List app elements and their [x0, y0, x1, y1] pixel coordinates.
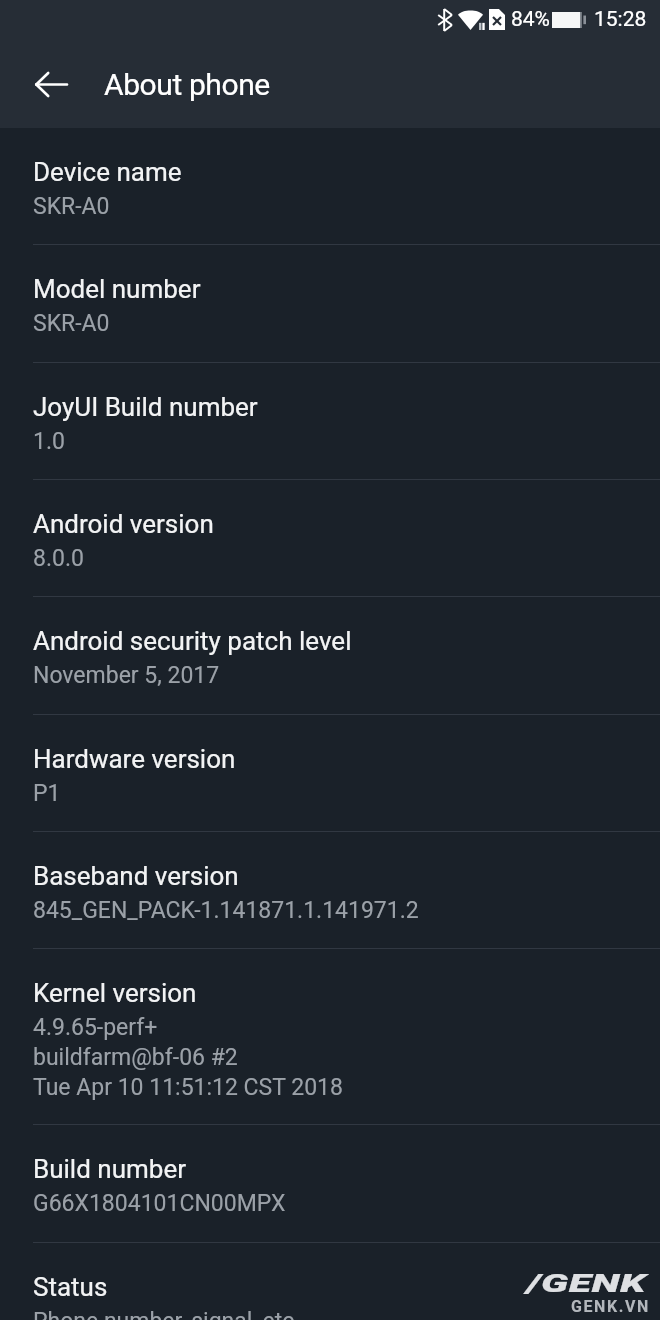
staticText: Device name [33, 157, 182, 187]
button[interactable]: Back [3, 44, 99, 124]
button[interactable]: Build number [0, 1125, 660, 1242]
staticText: SKR-A0 [33, 310, 110, 337]
staticText: 845_GEN_PACK-1.141871.1.141971.2 [33, 897, 419, 924]
button[interactable]: Model number [0, 245, 660, 362]
staticText: Phone number, signal, etc. [33, 1308, 301, 1320]
button[interactable]: JoyUI Build number [0, 363, 660, 480]
button[interactable]: Status [0, 1243, 660, 1320]
staticText: buildfarm@bf-06 #2 [33, 1044, 238, 1071]
staticText: Hardware version [33, 744, 236, 774]
button[interactable]: Android security patch level [0, 597, 660, 714]
button[interactable]: Hardware version [0, 715, 660, 832]
staticText: GENK.VN [571, 1297, 650, 1316]
button[interactable]: Device name [0, 128, 660, 245]
staticText: 8.0.0 [33, 545, 84, 572]
staticText: Status [33, 1272, 108, 1302]
staticText: P1 [33, 780, 61, 807]
staticText: G66X1804101CN00MPX [33, 1190, 286, 1217]
staticText: 1.0 [33, 428, 65, 455]
staticText: SKR-A0 [33, 193, 110, 220]
staticText: November 5, 2017 [33, 662, 220, 689]
staticText: Build number [33, 1154, 186, 1184]
staticText: /GENK [527, 1268, 646, 1299]
staticText: Android version [33, 509, 214, 539]
button[interactable]: Baseband version [0, 832, 660, 949]
staticText: 84% [511, 7, 550, 32]
staticText: Tue Apr 10 11:51:12 CST 2018 [33, 1074, 343, 1101]
staticText: About phone [104, 67, 270, 102]
staticText: Android security patch level [33, 626, 352, 656]
staticText: Kernel version [33, 978, 197, 1008]
staticText: Model number [33, 274, 201, 304]
staticText: JoyUI Build number [33, 392, 258, 422]
button[interactable]: Kernel version [0, 949, 660, 1125]
staticText: 15:28 [594, 7, 647, 32]
button[interactable]: Android version [0, 480, 660, 597]
staticText: 4.9.65-perf+ [33, 1014, 158, 1041]
staticText: Baseband version [33, 861, 239, 891]
